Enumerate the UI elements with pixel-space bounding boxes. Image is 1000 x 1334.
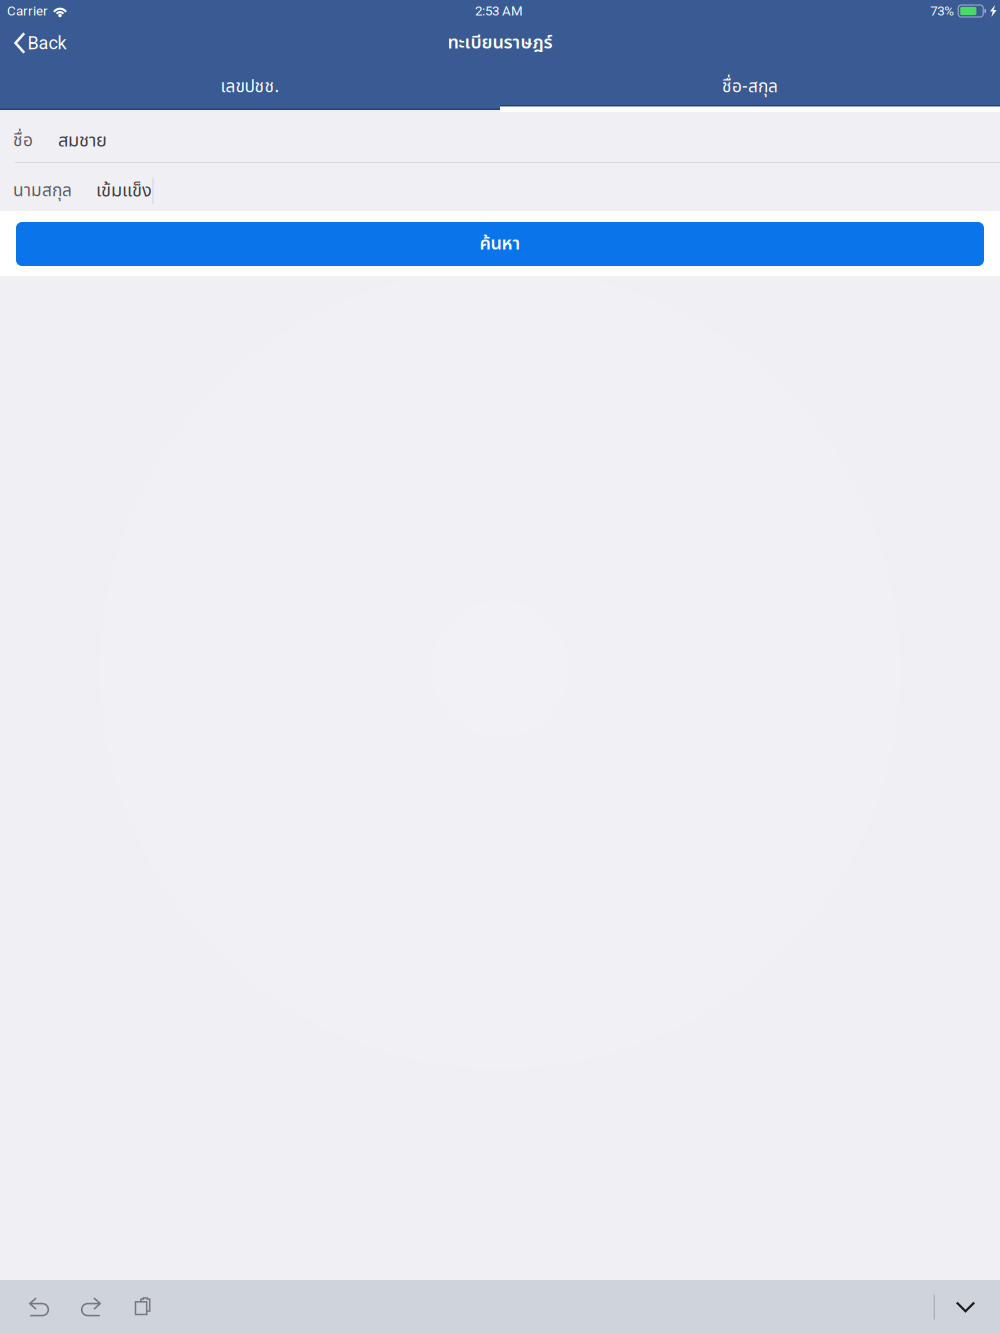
button[interactable]: ชื่อ-สกุล [500,64,1000,110]
button[interactable]: Back [0,22,76,64]
staticText: เข้มแข็ง [96,177,152,205]
staticText: 73% [930,3,954,19]
staticText: 2:53 AM [475,3,523,19]
staticText: ชื่อ [13,128,33,154]
staticText: ทะเบียนราษฎร์ [447,29,552,57]
staticText: ค้นหา [479,230,520,258]
staticText: ชื่อ-สกุล [722,74,778,100]
staticText: Carrier [7,3,48,19]
button[interactable]: นามสกุล [0,163,1000,211]
staticText: สมชาย [58,127,107,155]
staticText: นามสกุล [13,178,72,204]
button[interactable]: Redo [65,1280,117,1334]
staticText: Back [27,32,66,54]
button[interactable]: Paste [117,1280,169,1334]
button[interactable]: ค้นหา [16,222,984,266]
staticText: เลขปชช. [220,74,279,100]
button[interactable]: Hide keyboard [935,1280,996,1334]
button[interactable]: เลขปชช. [0,64,500,110]
button[interactable]: Undo [13,1280,65,1334]
button[interactable]: ชื่อ [0,112,1000,162]
